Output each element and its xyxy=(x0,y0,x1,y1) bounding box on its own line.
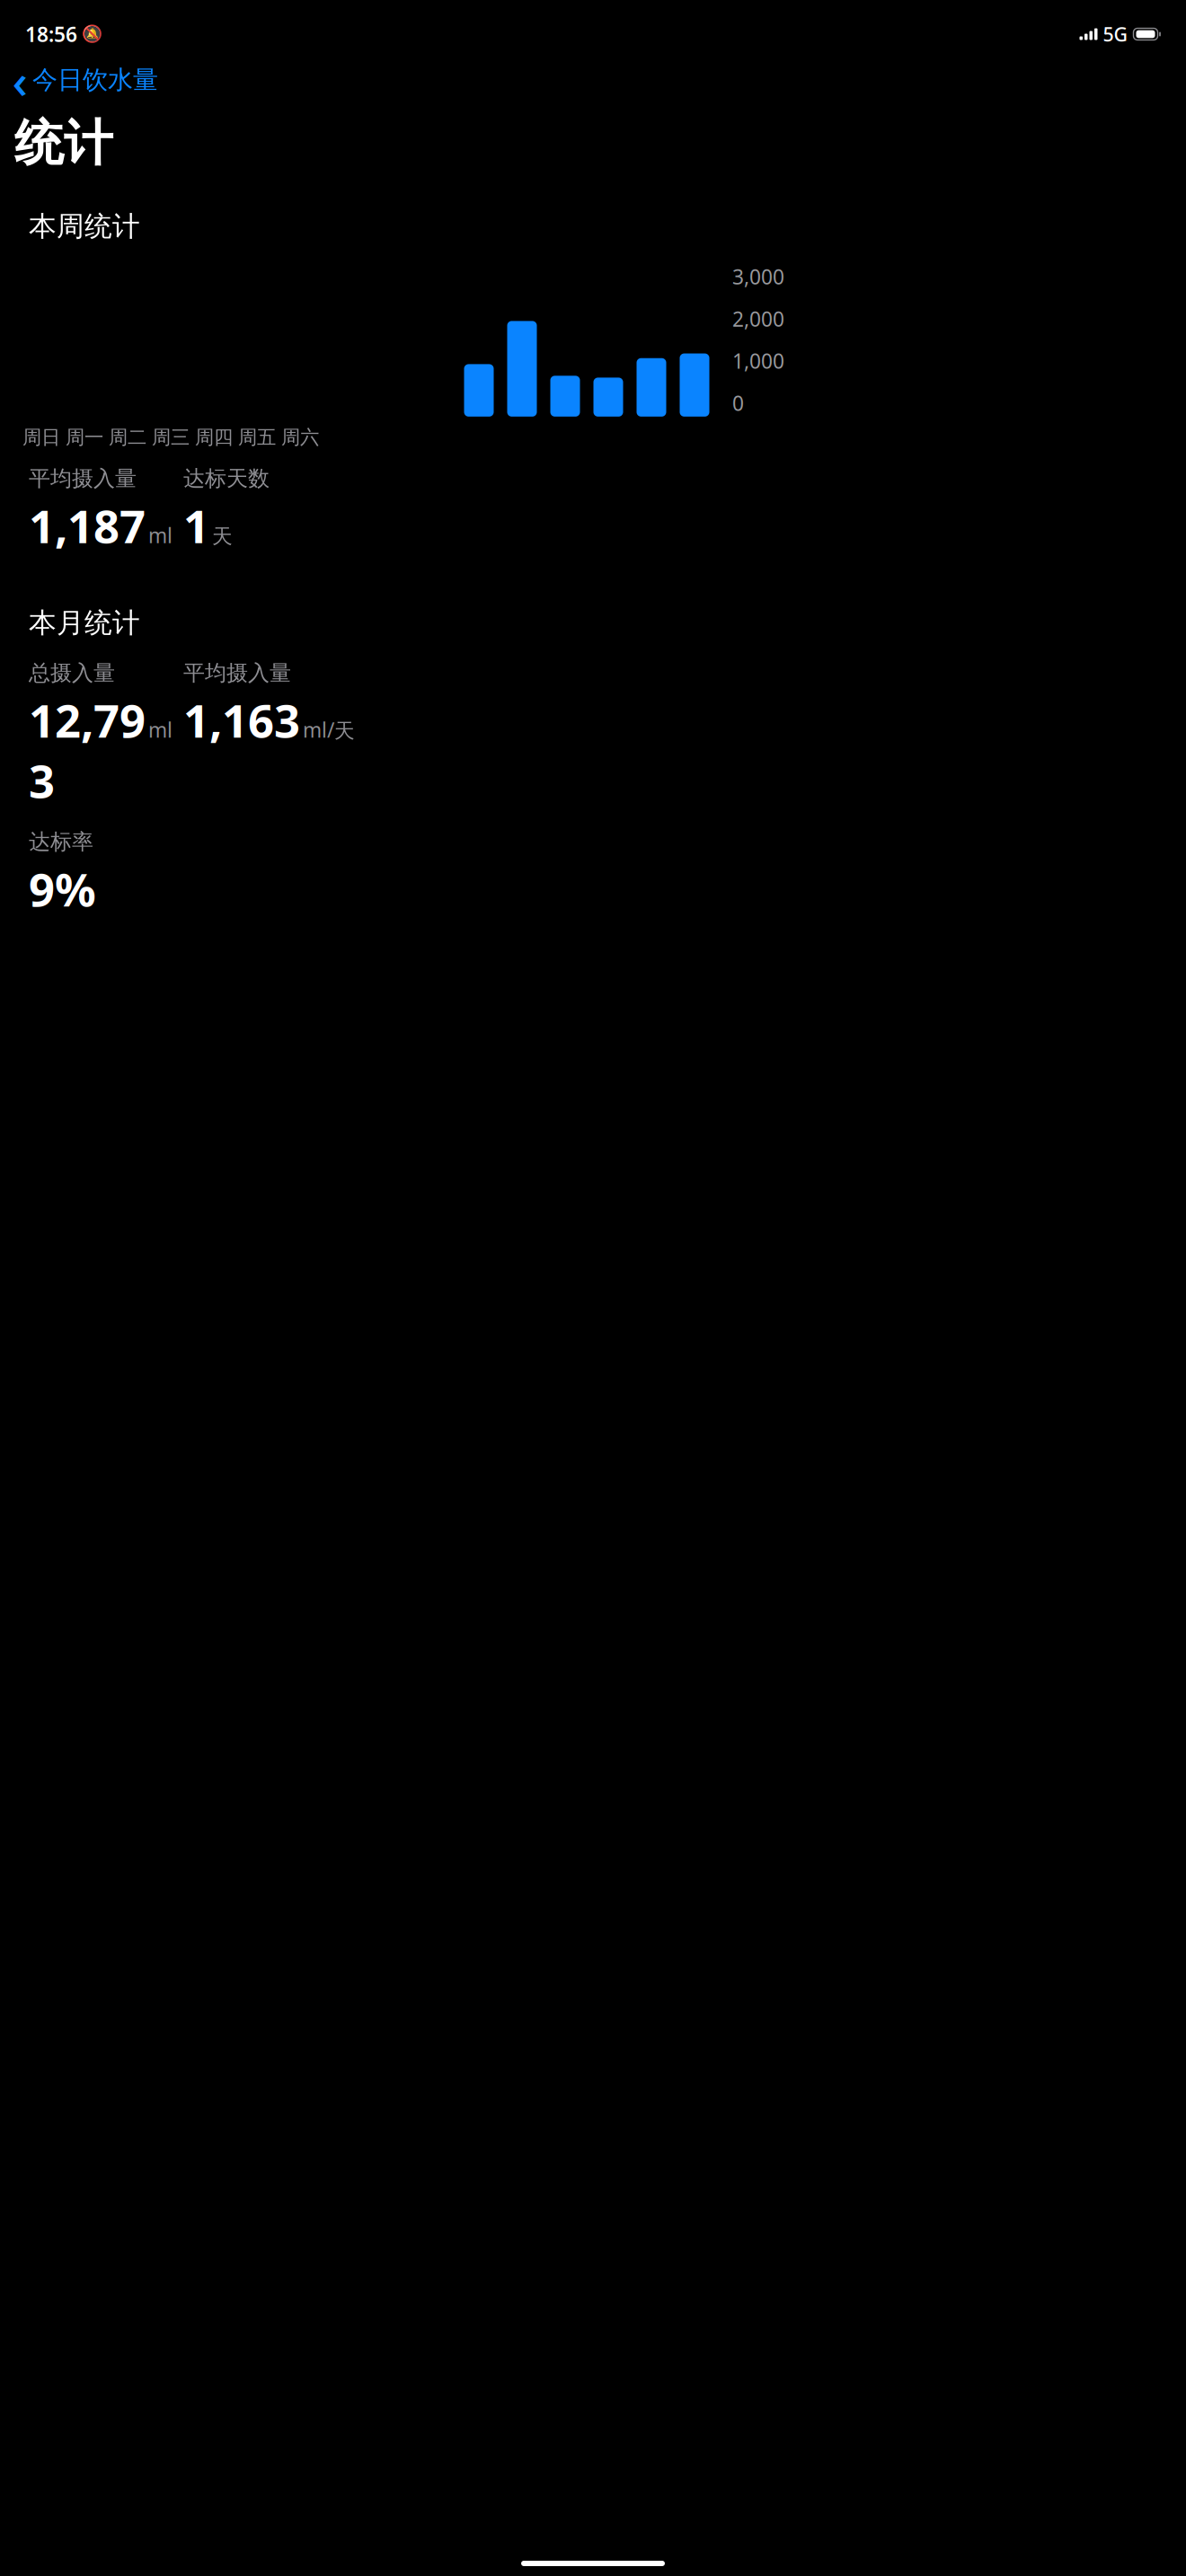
staticText: 0 xyxy=(732,390,744,417)
staticText: 达标率 xyxy=(29,829,93,855)
staticText: 达标天数 xyxy=(183,465,270,492)
staticText: 周二 xyxy=(109,426,146,449)
staticText: 周三 xyxy=(152,426,190,449)
staticText: 周日 xyxy=(22,426,60,449)
staticText: 1,000 xyxy=(732,347,784,374)
staticText: 今日饮水量 xyxy=(32,64,158,95)
staticText: 周四 xyxy=(195,426,233,449)
staticText: ml xyxy=(148,522,173,549)
staticText: ml/天 xyxy=(303,716,355,743)
staticText: 周一 xyxy=(66,426,103,449)
staticText: 周六 xyxy=(281,426,319,449)
staticText: 5G xyxy=(1103,21,1128,47)
staticText: 🔕 xyxy=(82,25,102,44)
staticText: 1,163 xyxy=(183,690,300,750)
staticText: ml xyxy=(148,716,173,743)
staticText: 1,187 xyxy=(29,495,146,556)
staticText: 12,793 xyxy=(29,690,146,811)
staticText: 9% xyxy=(29,859,96,919)
staticText: 平均摄入量 xyxy=(183,660,291,686)
staticText: 周五 xyxy=(238,426,276,449)
staticText: 2,000 xyxy=(732,305,784,332)
staticText: 3,000 xyxy=(732,263,784,290)
staticText: 统计 xyxy=(14,113,113,173)
staticText: 本月统计 xyxy=(29,606,140,640)
staticText: ‹ xyxy=(12,48,27,112)
button[interactable]: ‹ xyxy=(0,59,158,101)
staticText: 平均摄入量 xyxy=(29,465,137,492)
staticText: 本周统计 xyxy=(29,209,140,243)
staticText: 总摄入量 xyxy=(29,660,115,686)
staticText: 天 xyxy=(212,524,233,549)
staticText: 18:56 xyxy=(25,21,77,48)
staticText: 1 xyxy=(183,495,209,556)
